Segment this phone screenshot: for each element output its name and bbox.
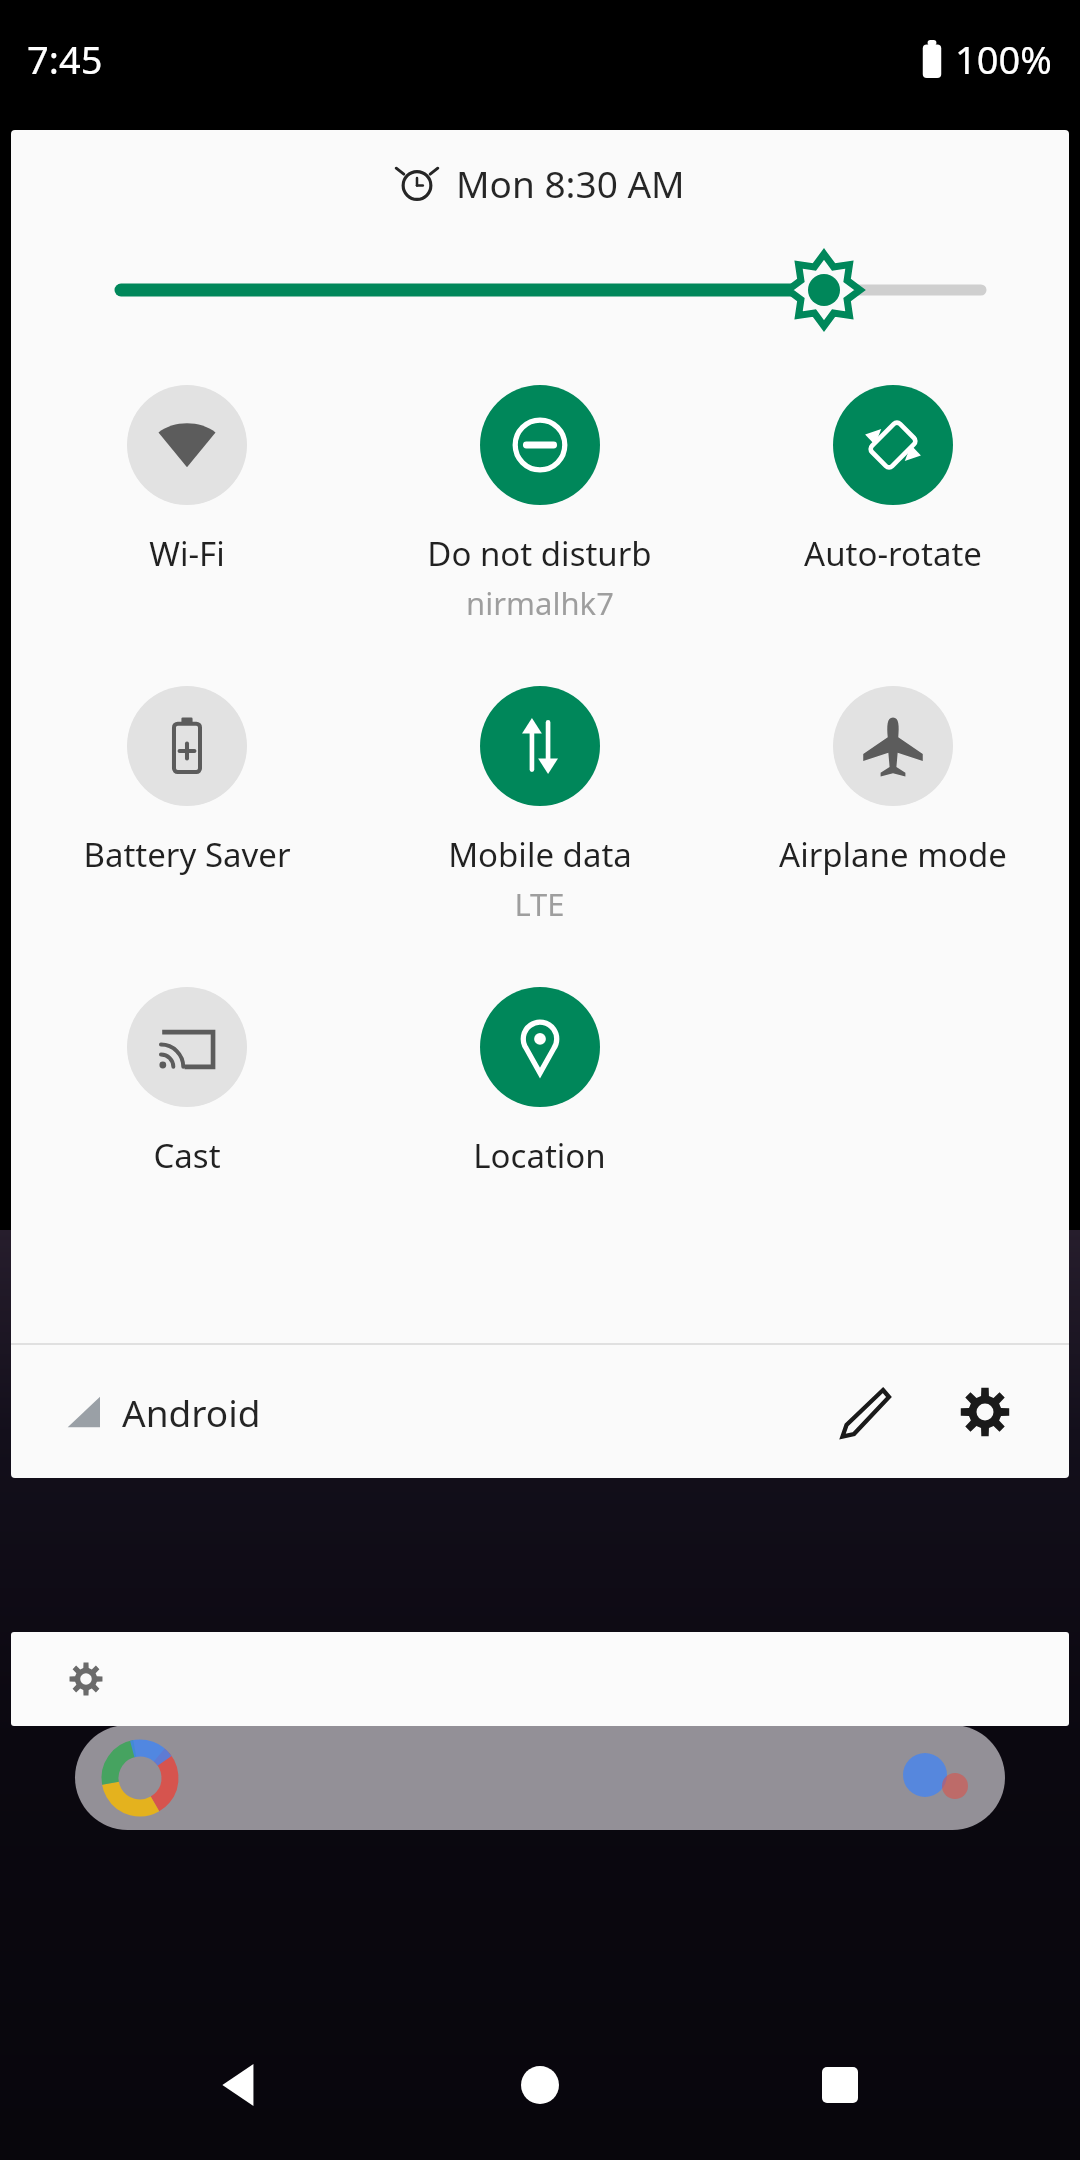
staticText: Do not disturb: [427, 531, 652, 576]
staticText: Auto-rotate: [804, 531, 982, 576]
button[interactable]: Auto-rotate: [716, 385, 1069, 576]
button[interactable]: Do not disturb: [363, 385, 716, 624]
button[interactable]: Edit: [805, 1352, 925, 1472]
button[interactable]: Android: [11, 1345, 805, 1478]
button[interactable]: Wi-Fi: [11, 385, 363, 576]
button[interactable]: Mobile data: [363, 686, 716, 925]
staticText: Airplane mode: [779, 832, 1007, 877]
button[interactable]: Back: [185, 2030, 295, 2140]
staticText: Cast: [153, 1133, 221, 1178]
staticText: Mon 8:30 AM: [456, 158, 685, 208]
staticText: Android: [122, 1387, 261, 1437]
staticText: LTE: [514, 883, 565, 925]
button[interactable]: Mon 8:30 AM: [11, 130, 1069, 235]
staticText: 7:45: [27, 33, 103, 85]
button[interactable]: Settings: [925, 1352, 1045, 1472]
button[interactable]: Battery Saver: [11, 686, 363, 877]
staticText: Battery Saver: [83, 832, 291, 877]
button[interactable]: Notification settings: [11, 1632, 1069, 1726]
button[interactable]: Cast: [11, 987, 363, 1178]
button[interactable]: Brightness: [11, 235, 1069, 345]
button[interactable]: Airplane mode: [716, 686, 1069, 877]
staticText: nirmalhk7: [466, 582, 614, 624]
staticText: Wi-Fi: [149, 531, 225, 576]
staticText: 100%: [955, 33, 1052, 85]
button[interactable]: Home: [485, 2030, 595, 2140]
button[interactable]: Location: [363, 987, 716, 1178]
button[interactable]: Recents: [785, 2030, 895, 2140]
staticText: Mobile data: [448, 832, 632, 877]
staticText: Location: [473, 1133, 606, 1178]
